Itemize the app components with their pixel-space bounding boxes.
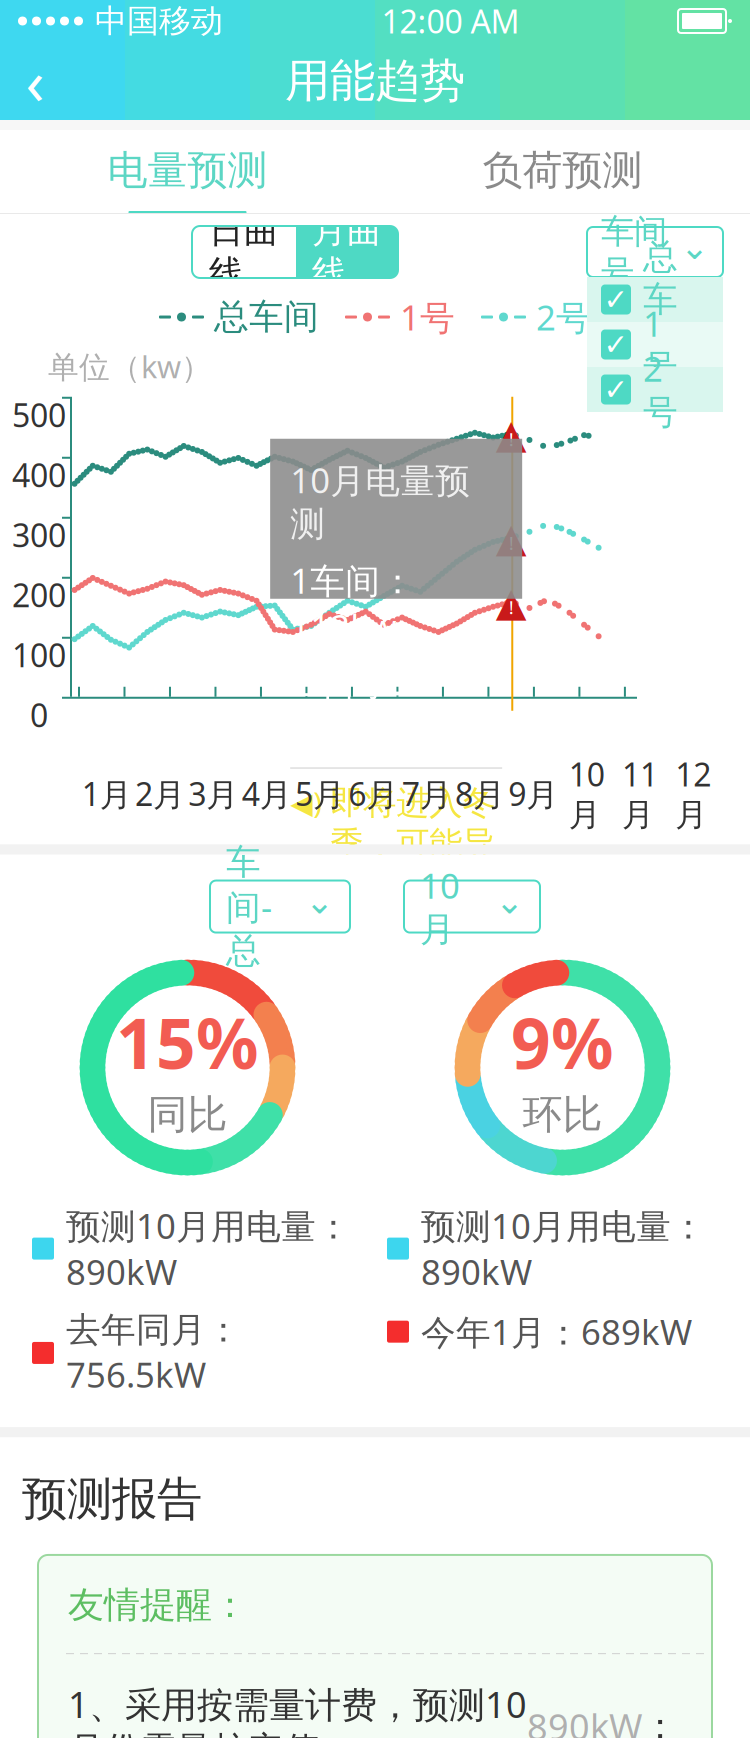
staticText: ⌄	[680, 227, 709, 267]
staticText: 单位（kw）	[48, 346, 212, 387]
staticText: 12月	[675, 753, 711, 835]
staticText: 友情提醒：	[68, 1583, 248, 1627]
staticText: 即将进入冬季，可能导致设备电能消耗增加	[330, 782, 495, 946]
button[interactable]: 车间-总	[210, 881, 350, 933]
staticText: ▲	[496, 515, 527, 560]
staticText: 2 号	[643, 345, 678, 434]
button[interactable]: ✓	[587, 367, 723, 412]
staticText: 200	[12, 573, 66, 616]
button[interactable]: 月曲线	[296, 226, 398, 278]
staticText: 1月	[82, 772, 132, 815]
staticText: 中国移动	[95, 1, 223, 41]
staticText: 2车间：257kw	[290, 659, 415, 752]
staticText: 890kW	[527, 1702, 642, 1738]
button[interactable]: 日曲线	[192, 226, 296, 278]
staticText: 10月	[420, 862, 460, 951]
button[interactable]: ✓	[587, 322, 723, 367]
button[interactable]: 电量预测	[0, 130, 375, 214]
staticText: 10月电量预测	[290, 457, 470, 545]
staticText: 400	[12, 453, 66, 496]
staticText: !	[509, 427, 514, 451]
button[interactable]: ✓	[587, 277, 723, 322]
staticText: 车间-总	[226, 841, 272, 972]
staticText: 6月	[348, 772, 398, 815]
staticText: ；	[642, 1704, 678, 1738]
button[interactable]: Back	[0, 46, 70, 116]
staticText: 电量预测	[107, 146, 267, 195]
staticText: 4月	[242, 772, 292, 815]
staticText: 去年同月：756.5kW	[66, 1309, 241, 1397]
staticText: 今年1月：689kW	[421, 1309, 692, 1355]
button[interactable]: 车间号	[587, 227, 723, 277]
staticText: 12:00 AM	[381, 0, 519, 42]
staticText: !	[509, 530, 514, 555]
staticText: 日曲线	[209, 209, 279, 295]
staticText: 0	[30, 693, 48, 736]
staticText: 500	[12, 393, 66, 436]
staticText: 10月	[569, 753, 605, 835]
staticText: 1、采用按需量计费，预测10月份需量核定值：	[68, 1680, 527, 1738]
staticText: 同比	[147, 1090, 227, 1139]
staticText: 预测10月用电量：890kW	[421, 1203, 706, 1295]
staticText: ✓	[603, 283, 628, 316]
staticText: 2月	[135, 772, 185, 815]
staticText: 2号	[536, 294, 591, 340]
staticText: 9%	[511, 996, 614, 1088]
staticText: 月曲线	[312, 209, 382, 295]
button[interactable]: 10月	[404, 881, 540, 933]
staticText: 负荷预测	[482, 146, 642, 195]
staticText: ✓	[603, 328, 628, 361]
staticText: 环比	[522, 1090, 602, 1139]
button[interactable]: 负荷预测	[375, 130, 750, 214]
staticText: ⌄	[305, 882, 334, 921]
staticText: ◀)	[290, 782, 322, 821]
staticText: ‹	[25, 40, 44, 122]
staticText: ✓	[603, 373, 628, 406]
staticText: 总车间	[214, 296, 319, 338]
staticText: ⌄	[495, 882, 524, 921]
staticText: !	[509, 595, 514, 619]
staticText: 1车间：112kw	[290, 557, 415, 649]
staticText: 15%	[116, 996, 259, 1088]
staticText: 预测报告	[22, 1471, 202, 1527]
staticText: 7月	[402, 772, 452, 815]
staticText: 100	[12, 633, 66, 676]
staticText: 用能趋势	[285, 53, 465, 109]
staticText: 3月	[188, 772, 238, 815]
staticText: 总车间	[643, 236, 678, 363]
staticText: 8月	[455, 772, 505, 815]
staticText: 9月	[508, 772, 558, 815]
staticText: ▲	[496, 579, 527, 625]
staticText: 11月	[622, 753, 658, 835]
staticText: 5月	[295, 772, 345, 815]
staticText: 车间号	[601, 211, 667, 293]
staticText: 300	[12, 513, 66, 556]
staticText: 预测10月用电量：890kW	[66, 1203, 351, 1295]
staticText: ▲	[496, 411, 527, 457]
staticText: 1 号	[643, 300, 678, 389]
staticText: 1号	[400, 294, 455, 340]
